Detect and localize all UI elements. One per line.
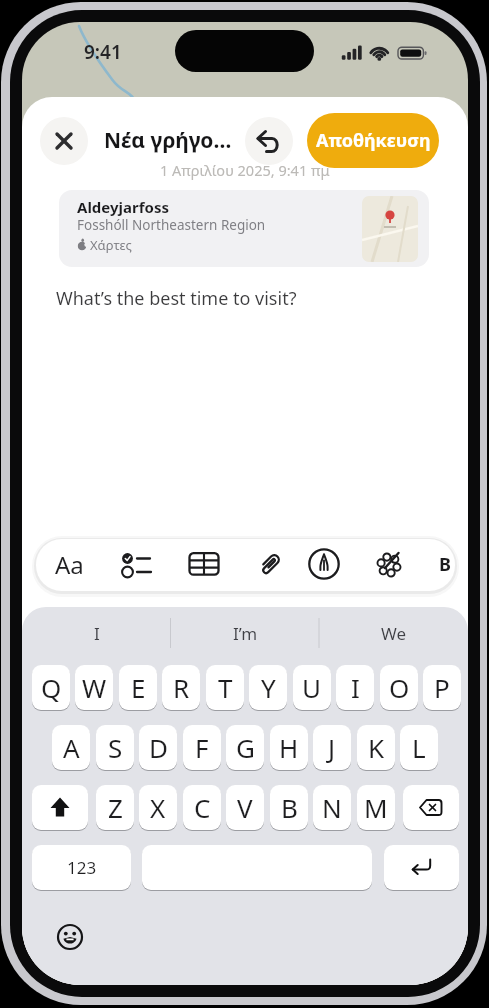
button[interactable]: N <box>313 785 351 830</box>
button[interactable]: E <box>119 665 157 710</box>
staticText: P <box>434 670 450 705</box>
button[interactable]: We <box>319 616 468 650</box>
button[interactable]: W <box>75 665 113 710</box>
button[interactable]: I <box>22 616 171 650</box>
button[interactable]: I <box>336 665 374 710</box>
staticText: C <box>194 790 211 825</box>
staticText: O <box>389 670 410 705</box>
staticText: I <box>94 622 100 645</box>
staticText: V <box>237 790 253 825</box>
staticText: B <box>281 790 298 825</box>
button[interactable]: Y <box>249 665 287 710</box>
button[interactable]: K <box>357 725 395 770</box>
button[interactable]: B <box>270 785 308 830</box>
staticText: S <box>108 730 123 765</box>
button[interactable]: V <box>226 785 264 830</box>
button[interactable] <box>250 544 290 584</box>
button[interactable]: U <box>293 665 331 710</box>
button[interactable]: O <box>380 665 418 710</box>
button[interactable]: F <box>183 725 221 770</box>
staticText: W <box>82 670 107 705</box>
staticText: 123 <box>67 856 97 879</box>
button[interactable] <box>53 920 87 954</box>
button[interactable]: C <box>183 785 221 830</box>
button[interactable]: S <box>96 725 134 770</box>
button[interactable] <box>304 544 344 584</box>
staticText: Fosshóll Northeastern Region <box>77 216 266 234</box>
staticText: Νέα γρήγο… <box>104 126 232 155</box>
staticText: F <box>195 730 209 765</box>
button[interactable]: Z <box>96 785 134 830</box>
button[interactable] <box>116 545 156 585</box>
button[interactable]: L <box>400 725 438 770</box>
button[interactable] <box>40 117 88 165</box>
button[interactable]: M <box>357 785 395 830</box>
button[interactable] <box>370 544 410 584</box>
staticText: A <box>63 730 80 765</box>
staticText: What’s the best time to visit? <box>56 286 297 311</box>
staticText: T <box>218 670 233 705</box>
staticText: H <box>279 730 299 765</box>
staticText: We <box>381 622 407 645</box>
staticText: D <box>149 730 168 765</box>
staticText: E <box>131 670 146 705</box>
staticText: Z <box>108 790 123 825</box>
button[interactable] <box>245 117 293 165</box>
staticText: Aldeyjarfoss <box>77 197 169 217</box>
button[interactable]: G <box>226 725 264 770</box>
button[interactable] <box>403 785 459 830</box>
staticText: G <box>236 730 255 765</box>
button[interactable]: D <box>139 725 177 770</box>
staticText: Q <box>41 670 62 705</box>
staticText: U <box>302 670 322 705</box>
button[interactable]: X <box>139 785 177 830</box>
staticText: 1 Απριλίου 2025, 9:41 πμ <box>160 160 330 180</box>
button[interactable]: Aa <box>48 544 90 584</box>
button[interactable]: A <box>52 725 90 770</box>
button[interactable]: T <box>206 665 244 710</box>
button[interactable]: I’m <box>171 616 320 650</box>
button[interactable]: J <box>313 725 351 770</box>
staticText: 9:41 <box>84 39 122 61</box>
staticText: M <box>364 790 388 825</box>
button[interactable] <box>184 544 224 584</box>
staticText: J <box>328 730 336 765</box>
button[interactable]: R <box>162 665 200 710</box>
staticText: R <box>173 670 190 705</box>
staticText: L <box>412 730 426 765</box>
staticText: K <box>368 730 385 765</box>
button[interactable] <box>32 785 88 830</box>
staticText: N <box>322 790 342 825</box>
staticText: B <box>439 552 451 576</box>
button[interactable]: Aldeyjarfoss <box>59 190 429 267</box>
staticText: Αποθήκευση <box>316 128 431 153</box>
button[interactable]: P <box>423 665 461 710</box>
button[interactable]: Αποθήκευση <box>307 113 439 168</box>
staticText: Y <box>261 670 276 705</box>
staticText: Aa <box>55 548 84 581</box>
staticText: I’m <box>233 622 258 645</box>
button[interactable] <box>142 845 372 890</box>
staticText: I <box>351 670 360 705</box>
staticText: X <box>150 790 166 825</box>
staticText: Χάρτες <box>90 236 132 254</box>
button[interactable]: Q <box>32 665 70 710</box>
button[interactable]: H <box>270 725 308 770</box>
button[interactable]: 123 <box>32 845 131 890</box>
button[interactable] <box>384 845 459 890</box>
